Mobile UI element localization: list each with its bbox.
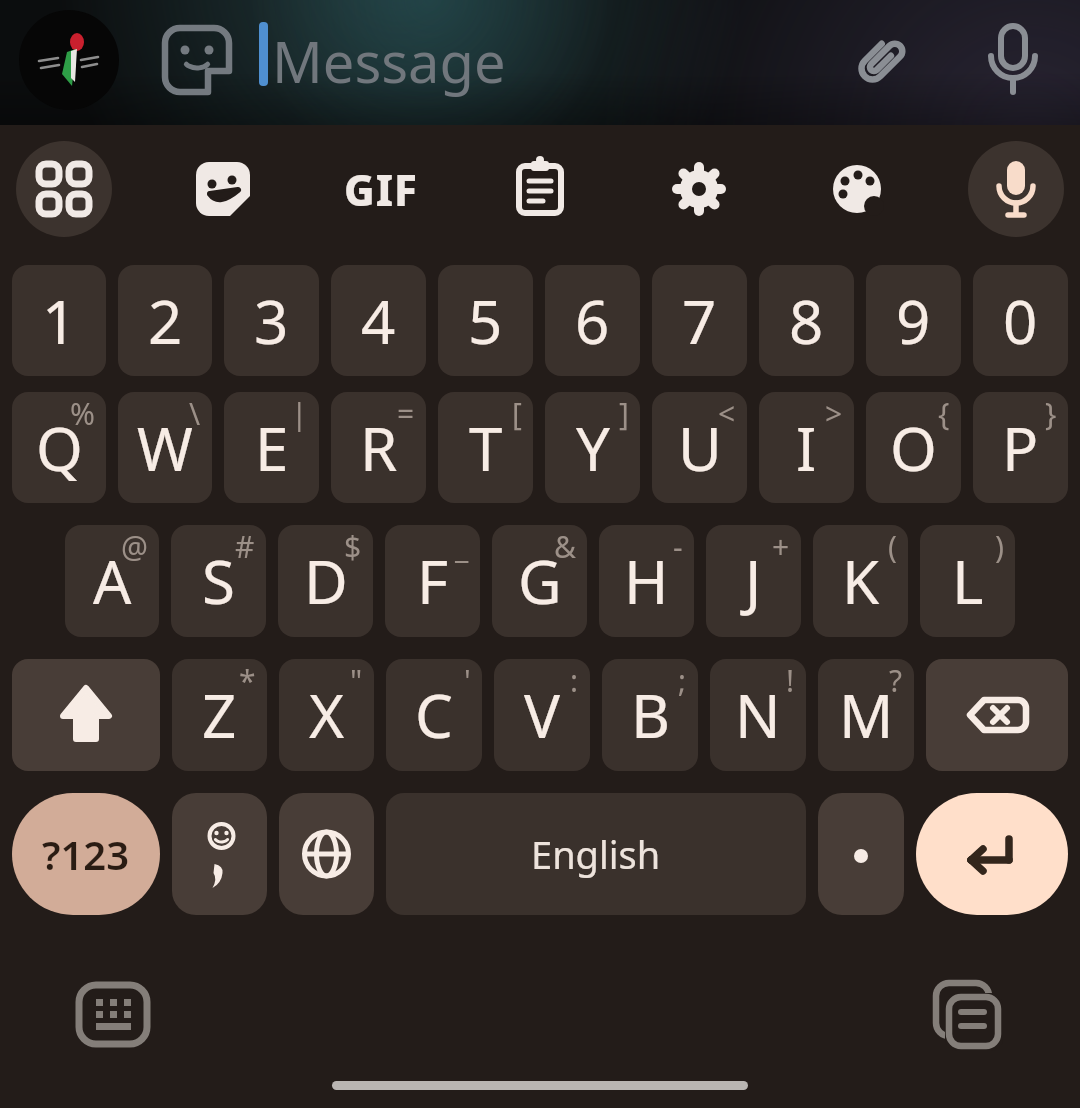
staticText: X [309, 674, 345, 756]
staticText: Message [272, 23, 506, 99]
staticText: # [235, 526, 255, 567]
staticText: A [93, 540, 132, 622]
staticText: V [524, 674, 560, 756]
staticText: G [518, 540, 562, 622]
staticText: ) [995, 526, 1004, 567]
staticText: + [772, 526, 790, 567]
staticText: Q [36, 407, 83, 489]
staticText: ( [888, 526, 897, 567]
staticText: { [938, 393, 950, 434]
staticText: 6 [575, 280, 610, 362]
staticText: 9 [896, 280, 931, 362]
staticText: GIF [344, 161, 418, 218]
staticText: 7 [682, 280, 717, 362]
staticText: S [202, 540, 235, 622]
staticText: } [1045, 393, 1057, 434]
staticText: K [842, 540, 880, 622]
staticText: B [631, 674, 670, 756]
staticText: F [417, 540, 449, 622]
staticText: = [397, 393, 415, 434]
staticText: M [839, 674, 894, 756]
staticText: 2 [148, 280, 183, 362]
staticText: H [624, 540, 669, 622]
staticText: * [239, 660, 256, 701]
staticText: L [952, 540, 984, 622]
staticText: W [137, 407, 193, 489]
staticText: 4 [361, 280, 396, 362]
staticText: N [735, 674, 781, 756]
staticText: \ [189, 393, 201, 434]
staticText: < [718, 393, 736, 434]
staticText: English [531, 828, 661, 880]
staticText: @ [121, 526, 148, 567]
staticText: & [554, 526, 576, 567]
staticText: $ [344, 526, 362, 567]
staticText: ; [678, 660, 687, 701]
staticText: | [291, 393, 308, 434]
staticText: U [678, 407, 722, 489]
staticText: ] [619, 393, 629, 434]
staticText: _ [455, 526, 469, 567]
staticText: : [570, 660, 579, 701]
staticText: % [70, 393, 95, 434]
staticText: Y [576, 407, 610, 489]
staticText: " [350, 660, 363, 701]
staticText: O [890, 407, 937, 489]
staticText: ! [786, 660, 795, 701]
staticText: D [304, 540, 348, 622]
staticText: I [796, 407, 817, 489]
staticText: 3 [254, 280, 289, 362]
staticText: R [360, 407, 398, 489]
staticText: 0 [1003, 280, 1038, 362]
staticText: E [255, 407, 289, 489]
staticText: P [1002, 407, 1039, 489]
staticText: - [673, 526, 683, 567]
staticText: T [469, 407, 503, 489]
staticText: ? [889, 660, 903, 701]
staticText: > [825, 393, 843, 434]
staticText: ?123 [42, 827, 130, 881]
staticText: [ [512, 393, 522, 434]
staticText: 5 [468, 280, 503, 362]
staticText: C [415, 674, 453, 756]
staticText: J [745, 540, 762, 622]
staticText: Z [202, 674, 237, 756]
staticText: 8 [789, 280, 824, 362]
staticText: ' [464, 660, 471, 701]
staticText: 1 [42, 280, 77, 362]
